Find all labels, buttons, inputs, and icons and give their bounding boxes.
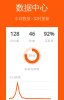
staticText: 46: [29, 30, 35, 37]
staticText: 访问量: [10, 39, 19, 42]
staticText: 目标完成度: [24, 67, 39, 71]
staticText: 七日趋势: [9, 76, 21, 79]
staticText: 数据中心: [16, 3, 48, 13]
staticText: 活跃度: [45, 39, 54, 42]
staticText: 128: [10, 30, 19, 37]
staticText: 85%: [29, 54, 35, 58]
staticText: 92%: [44, 30, 55, 37]
staticText: 新增: [29, 39, 35, 42]
staticText: 今日数据 · 实时更新: [14, 16, 49, 21]
